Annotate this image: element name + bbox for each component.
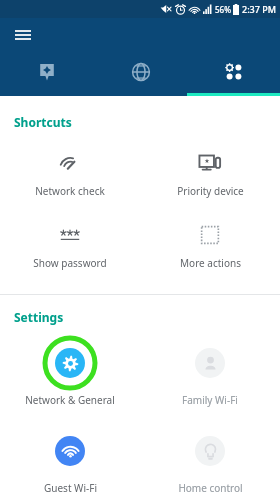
staticText: Settings <box>14 309 64 325</box>
staticText: Show password <box>33 256 107 270</box>
staticText: 56% <box>215 4 231 15</box>
staticText: Network & General <box>25 393 115 407</box>
button[interactable]: Show password <box>0 222 140 272</box>
button[interactable]: Family Wi-Fi <box>140 335 280 407</box>
button[interactable]: Home control <box>140 423 280 495</box>
staticText: Network check <box>35 184 105 198</box>
button[interactable]: Devices <box>0 52 94 96</box>
button[interactable]: Internet <box>94 52 187 96</box>
button[interactable]: Shortcuts <box>187 52 280 96</box>
staticText: Home control <box>178 481 243 495</box>
button[interactable]: Priority device <box>140 150 280 200</box>
button[interactable]: Guest Wi-Fi <box>0 423 140 495</box>
staticText: 2:37 PM <box>242 3 276 15</box>
staticText: Guest Wi-Fi <box>44 481 97 495</box>
button[interactable]: Menu <box>8 20 38 50</box>
button[interactable]: Network & General <box>0 335 140 407</box>
staticText: More actions <box>180 256 241 270</box>
button[interactable]: More actions <box>140 222 280 272</box>
staticText: Priority device <box>177 184 244 198</box>
staticText: Family Wi-Fi <box>182 393 238 407</box>
button[interactable]: Network check <box>0 150 140 200</box>
staticText: Shortcuts <box>14 114 72 130</box>
